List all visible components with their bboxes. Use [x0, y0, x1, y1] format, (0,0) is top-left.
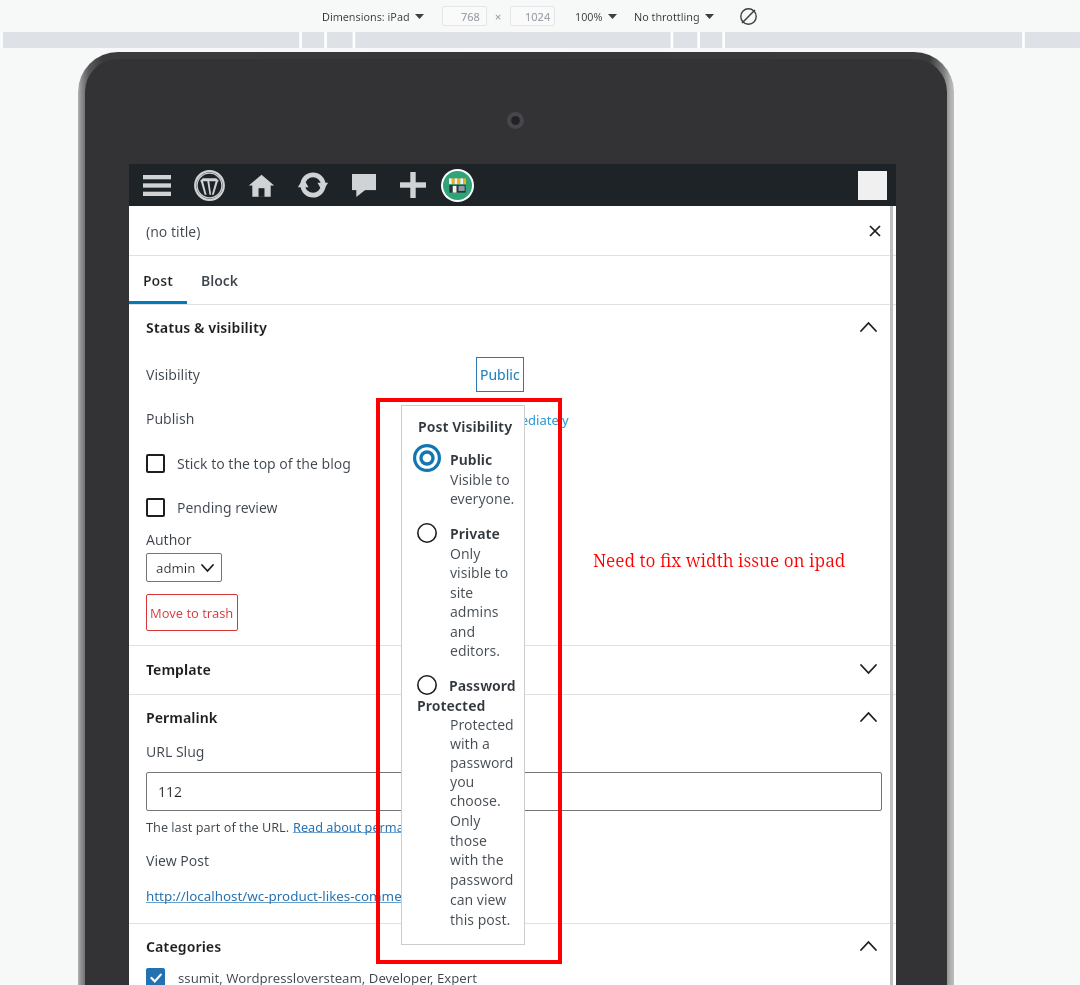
staticText: Dimensions: iPad [322, 9, 410, 24]
staticText: 768 [461, 9, 480, 24]
staticText: The last part of the URL. [146, 818, 293, 835]
button[interactable]: 768 [442, 6, 487, 26]
staticText: No throttling [634, 9, 700, 24]
staticText: password [450, 753, 514, 772]
staticText: Template [146, 660, 211, 679]
staticText: with a [450, 734, 490, 753]
button[interactable]: Read about permalinks [293, 818, 432, 835]
button[interactable]: New [390, 164, 435, 206]
button[interactable]: Dimensions: iPad [320, 9, 426, 24]
button[interactable]: Public [476, 357, 524, 392]
button[interactable]: Move to trash [146, 594, 238, 631]
staticText: Move to trash [150, 604, 234, 622]
button[interactable]: 112 [146, 772, 882, 811]
button[interactable]: ssumit, Wordpressloversteam, Developer, … [146, 968, 478, 985]
staticText: View Post [146, 851, 209, 870]
staticText: Permalink [146, 708, 218, 727]
staticText: password [450, 870, 514, 889]
staticText: admin [156, 559, 196, 577]
staticText: can view [450, 890, 507, 909]
button[interactable]: Collapse status and visibility [129, 315, 896, 339]
staticText: Pending review [177, 498, 278, 517]
staticText: Only [450, 544, 481, 563]
button[interactable]: Immediately [492, 411, 569, 429]
button[interactable]: Close panel [857, 213, 893, 249]
button[interactable]: 100% [573, 9, 619, 24]
staticText: 1024 [525, 9, 551, 24]
button[interactable]: No throttling [632, 9, 716, 24]
staticText: everyone. [450, 489, 515, 508]
staticText: editors. [450, 641, 500, 660]
staticText: Visibility [146, 365, 200, 384]
staticText: URL Slug [146, 742, 205, 761]
staticText: Protected [417, 696, 486, 715]
button[interactable]: Private visibility option [413, 519, 441, 547]
button[interactable]: Stick to the top of the blog [129, 449, 896, 477]
button[interactable]: Collapse categories [129, 934, 896, 958]
button[interactable]: Home [235, 164, 287, 206]
button[interactable]: Expand template [129, 657, 896, 681]
staticText: Categories [146, 937, 222, 956]
staticText: 112 [158, 782, 183, 801]
staticText: admins [450, 602, 499, 621]
staticText: those [450, 831, 487, 850]
staticText: Stick to the top of the blog [177, 454, 351, 473]
staticText: Only [450, 811, 481, 830]
staticText: Status & visibility [146, 318, 268, 337]
staticText: × [495, 9, 502, 24]
staticText: and [450, 622, 476, 641]
button[interactable]: WordPress [183, 164, 235, 206]
button[interactable]: Refresh [287, 164, 338, 206]
staticText: Post Visibility [418, 417, 513, 436]
button[interactable]: http://localhost/wc-product-likes-commen… [146, 887, 455, 905]
button[interactable]: Menu [131, 164, 183, 206]
button[interactable]: Public visibility option [413, 444, 441, 472]
staticText: Public [480, 365, 520, 384]
staticText: Visible to [450, 470, 510, 489]
button[interactable]: Password protected option [413, 671, 441, 699]
button[interactable]: Store [435, 164, 479, 206]
button[interactable]: Block [187, 256, 252, 305]
button[interactable]: 1024 [510, 6, 555, 26]
button[interactable]: Pending review [129, 493, 896, 521]
staticText: Publish [146, 409, 195, 428]
button[interactable]: Post [129, 256, 187, 305]
staticText: Private [450, 524, 500, 543]
staticText: (no title) [146, 222, 201, 241]
staticText: you [450, 772, 475, 791]
button[interactable]: Comments [338, 164, 390, 206]
staticText: Author [146, 530, 192, 549]
staticText: site [450, 583, 474, 602]
button[interactable]: admin [146, 553, 222, 582]
staticText: Need to fix width issue on ipad [593, 549, 846, 572]
staticText: ssumit, Wordpressloversteam, Developer, … [178, 969, 478, 985]
staticText: with the [450, 850, 504, 869]
button[interactable]: Rotate device [736, 4, 760, 28]
staticText: this post. [450, 910, 511, 929]
staticText: Public [450, 450, 493, 469]
staticText: Protected [450, 715, 514, 734]
staticText: Post [143, 271, 173, 290]
staticText: visible to [450, 563, 509, 582]
staticText: 100% [575, 9, 603, 24]
staticText: Block [201, 271, 239, 290]
staticText: Password [449, 676, 516, 695]
button[interactable]: Collapse permalink [129, 705, 896, 729]
staticText: choose. [450, 791, 501, 810]
